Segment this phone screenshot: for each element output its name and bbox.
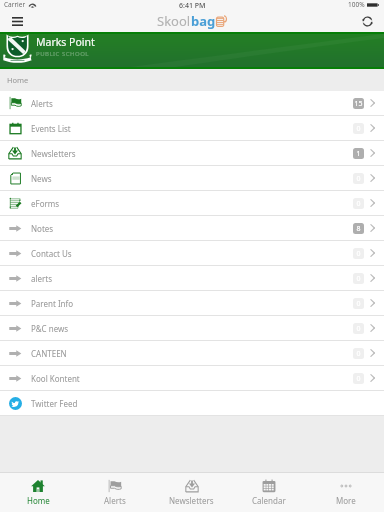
staticText: 15	[354, 99, 363, 109]
staticText: Events List	[31, 123, 71, 134]
staticText: 0	[356, 324, 361, 334]
staticText: 0	[356, 199, 361, 209]
button[interactable]: Home	[0, 472, 76, 512]
staticText: Contact Us	[31, 248, 72, 259]
staticText: 0	[356, 374, 361, 384]
button[interactable]: Alerts	[76, 472, 153, 512]
button[interactable]: Twitter Feed	[0, 391, 384, 416]
button[interactable]: Refresh	[358, 12, 376, 30]
staticText: Notes	[31, 223, 54, 234]
staticText: 0	[356, 124, 361, 134]
staticText: Kool Kontent	[31, 373, 80, 384]
button[interactable]: CANTEEN	[0, 341, 384, 366]
staticText: Marks Point	[36, 35, 95, 49]
button[interactable]: Contact Us	[0, 241, 384, 266]
staticText: 0	[356, 249, 361, 259]
staticText: PUBLIC SCHOOL	[36, 50, 89, 58]
button[interactable]: alerts	[0, 266, 384, 291]
staticText: CANTEEN	[31, 348, 67, 359]
button[interactable]: Alerts	[0, 91, 384, 116]
button[interactable]: Newsletters	[0, 141, 384, 166]
button[interactable]: eForms	[0, 191, 384, 216]
staticText: eForms	[31, 198, 60, 209]
staticText: 0	[356, 349, 361, 359]
staticText: 6:41 PM	[179, 1, 206, 11]
staticText: Calendar	[252, 495, 286, 506]
staticText: News	[31, 173, 52, 184]
staticText: alerts	[31, 273, 53, 284]
button[interactable]: More	[307, 472, 384, 512]
staticText: Newsletters	[31, 148, 76, 159]
staticText: bag	[191, 12, 216, 30]
button[interactable]: P&C news	[0, 316, 384, 341]
staticText: Parent Info	[31, 298, 74, 309]
button[interactable]: Calendar	[230, 472, 307, 512]
staticText: Newsletters	[169, 495, 214, 506]
staticText: 0	[356, 174, 361, 184]
button[interactable]: Kool Kontent	[0, 366, 384, 391]
staticText: More	[336, 495, 356, 506]
staticText: Home	[7, 75, 29, 85]
button[interactable]: Newsletters	[153, 472, 230, 512]
staticText: P&C news	[31, 323, 69, 334]
button[interactable]: Notes	[0, 216, 384, 241]
button[interactable]: Events List	[0, 116, 384, 141]
staticText: 0	[356, 274, 361, 284]
staticText: Skool	[157, 12, 191, 30]
button[interactable]: News	[0, 166, 384, 191]
staticText: Alerts	[31, 98, 53, 109]
staticText: Alerts	[104, 495, 126, 506]
staticText: 1	[356, 149, 361, 159]
staticText: Carrier	[4, 0, 26, 9]
staticText: Home	[27, 495, 50, 506]
staticText: 100%	[348, 0, 365, 9]
staticText: 0	[356, 299, 361, 309]
staticText: 8	[356, 224, 361, 234]
button[interactable]: Menu	[8, 12, 26, 30]
button[interactable]: Parent Info	[0, 291, 384, 316]
staticText: Twitter Feed	[31, 398, 78, 409]
